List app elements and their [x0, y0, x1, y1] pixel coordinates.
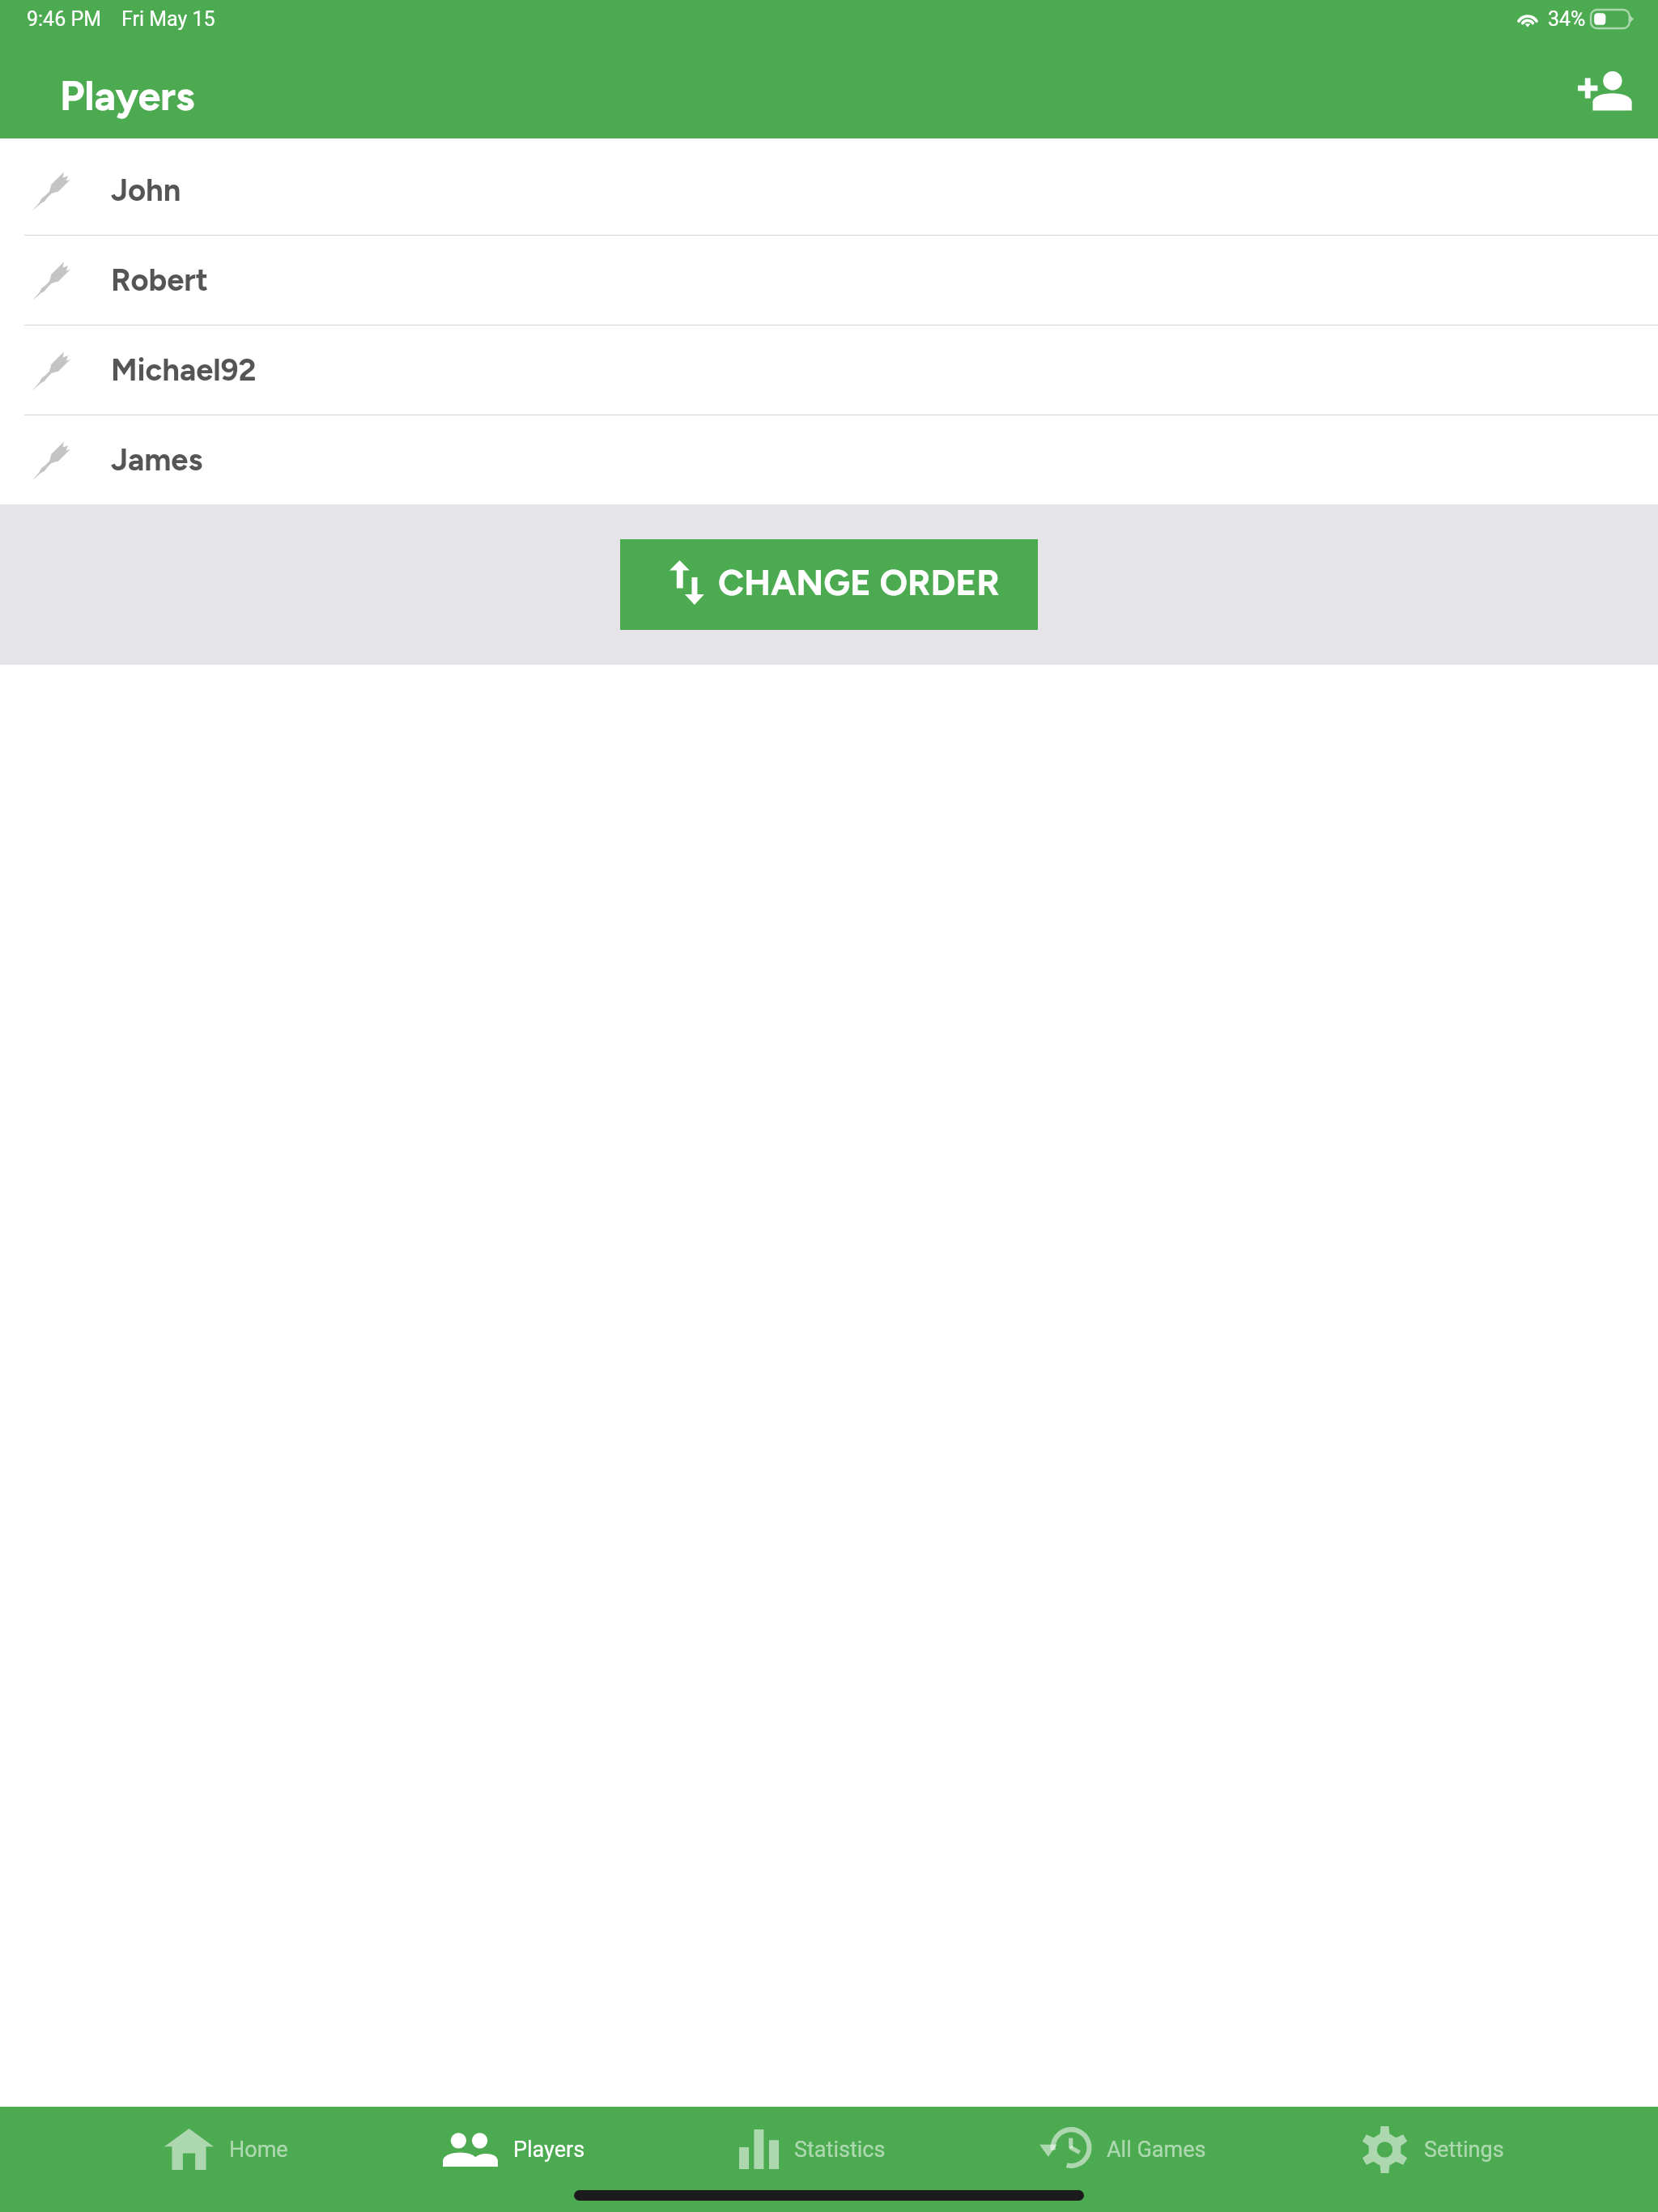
button[interactable]: John [0, 146, 1658, 235]
staticText: Fri May 15 [121, 7, 215, 31]
staticText: Home [229, 2137, 288, 2163]
staticText: John [111, 172, 181, 209]
button[interactable]: Settings [1361, 2107, 1504, 2192]
staticText: Players [60, 71, 195, 120]
staticText: Settings [1424, 2137, 1504, 2163]
staticText: James [111, 441, 203, 479]
staticText: 9:46 PM [27, 7, 102, 31]
button[interactable]: James [0, 415, 1658, 504]
staticText: Michael92 [111, 351, 257, 389]
button[interactable]: All Games [1039, 2107, 1206, 2192]
button[interactable]: Players [443, 2107, 585, 2192]
staticText: Players [513, 2137, 585, 2163]
button[interactable]: Home [164, 2107, 288, 2192]
button[interactable]: Add player [1560, 57, 1649, 125]
button[interactable]: Robert [0, 236, 1658, 325]
staticText: All Games [1107, 2137, 1206, 2163]
staticText: 34% [1548, 7, 1586, 31]
button[interactable]: Michael92 [0, 325, 1658, 415]
button[interactable]: CHANGE ORDER [620, 539, 1038, 630]
staticText: Robert [111, 262, 208, 299]
button[interactable]: Statistics [739, 2107, 886, 2192]
staticText: Statistics [794, 2137, 886, 2163]
staticText: CHANGE ORDER [718, 561, 1000, 604]
